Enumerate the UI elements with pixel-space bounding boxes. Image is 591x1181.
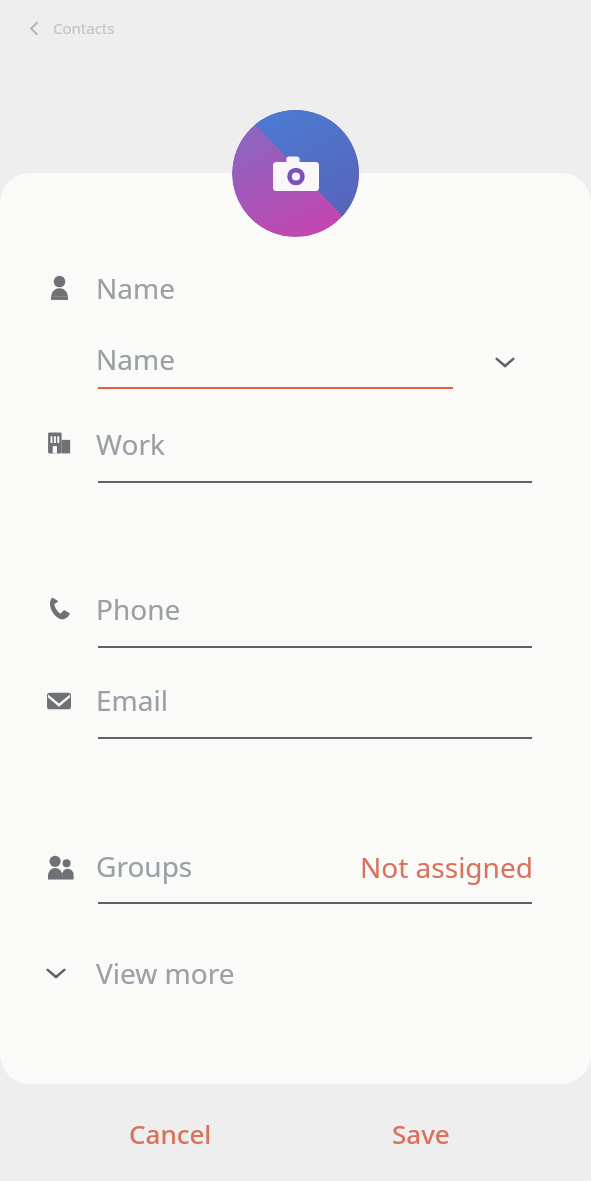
- staticText: Contacts: [53, 18, 115, 38]
- button[interactable]: View more: [30, 943, 280, 1003]
- staticText: Phone: [96, 590, 181, 628]
- staticText: Not assigned: [360, 848, 533, 886]
- button[interactable]: Cancel: [105, 1108, 235, 1158]
- button[interactable]: Add photo: [232, 110, 359, 237]
- staticText: Email: [96, 681, 168, 719]
- staticText: Cancel: [129, 1116, 212, 1151]
- staticText: Groups: [96, 847, 193, 885]
- staticText: Name: [96, 340, 175, 378]
- button[interactable]: Expand name fields: [485, 342, 525, 382]
- button[interactable]: Back: [17, 11, 51, 45]
- button[interactable]: Not assigned: [330, 847, 533, 887]
- staticText: Name: [96, 269, 175, 307]
- staticText: View more: [96, 954, 235, 992]
- button[interactable]: Save: [360, 1108, 482, 1158]
- staticText: Save: [392, 1116, 450, 1151]
- staticText: Work: [96, 425, 165, 463]
